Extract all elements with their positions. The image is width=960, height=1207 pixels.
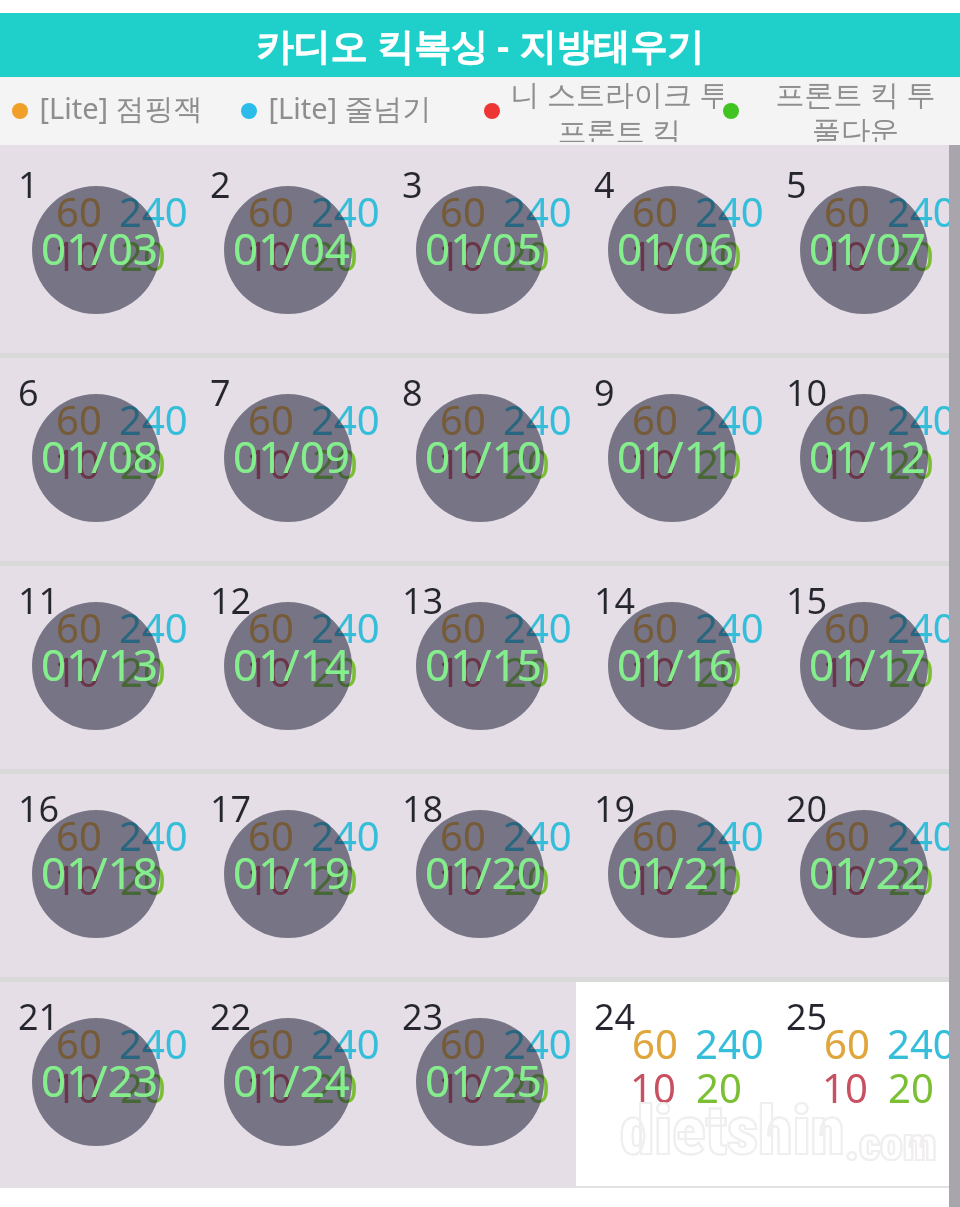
staticText: 10 [822, 644, 868, 698]
staticText: 60 [56, 808, 102, 862]
button[interactable]: 11 [0, 564, 192, 772]
staticText: [Lite] 줄넘기 [268, 88, 432, 128]
staticText: 01/25 [425, 1050, 543, 1110]
button[interactable]: 10 [768, 356, 960, 564]
staticText: 20 [312, 644, 358, 698]
staticText: 60 [824, 392, 870, 446]
staticText: 01/10 [425, 426, 543, 486]
staticText: 01/15 [425, 634, 543, 694]
staticText: 20 [696, 436, 742, 490]
button[interactable]: 12 [192, 564, 384, 772]
staticText: 10 [630, 436, 676, 490]
staticText: 20 [504, 1060, 550, 1114]
staticText: 8 [402, 368, 423, 417]
staticText: 니 스트라이크 투 프론트 킥 [510, 74, 723, 142]
staticText: 01/24 [233, 1050, 351, 1110]
staticText: 240 [887, 808, 956, 862]
button[interactable]: 23 [384, 980, 576, 1188]
staticText: 20 [504, 644, 550, 698]
button[interactable]: 14 [576, 564, 768, 772]
staticText: 10 [822, 852, 868, 906]
button[interactable]: 15 [768, 564, 960, 772]
button[interactable]: 6 [0, 356, 192, 564]
staticText: 10 [822, 228, 868, 282]
staticText: 01/05 [425, 218, 543, 278]
staticText: 20 [120, 644, 166, 698]
staticText: 10 [54, 436, 100, 490]
staticText: 20 [696, 1060, 742, 1114]
staticText: 20 [312, 228, 358, 282]
staticText: 20 [888, 228, 934, 282]
button[interactable]: 4 [576, 148, 768, 356]
staticText: 10 [630, 644, 676, 698]
staticText: 카디오 킥복싱 - 지방태우기 [256, 20, 704, 71]
staticText: 6 [18, 368, 39, 417]
staticText: 240 [119, 1016, 188, 1070]
staticText: 240 [887, 184, 956, 238]
button[interactable]: [Lite] 줄넘기 [241, 77, 433, 145]
button[interactable]: 2 [192, 148, 384, 356]
button[interactable]: 24 [576, 980, 768, 1188]
staticText: 60 [440, 600, 486, 654]
staticText: 10 [54, 852, 100, 906]
button[interactable]: 13 [384, 564, 576, 772]
staticText: 14 [594, 576, 636, 625]
staticText: 01/06 [617, 218, 735, 278]
staticText: 10 [438, 644, 484, 698]
staticText: 11 [18, 576, 60, 625]
staticText: 01/17 [809, 634, 927, 694]
staticText: 60 [824, 1016, 870, 1070]
staticText: 60 [824, 600, 870, 654]
staticText: 20 [888, 852, 934, 906]
button[interactable]: 22 [192, 980, 384, 1188]
staticText: 60 [56, 392, 102, 446]
button[interactable]: 20 [768, 772, 960, 980]
button[interactable]: 프론트 킥 투 풀다운 [723, 77, 960, 145]
staticText: 60 [248, 808, 294, 862]
button[interactable]: 니 스트라이크 투 프론트 킥 [484, 77, 723, 145]
staticText: 18 [402, 784, 444, 833]
button[interactable]: 3 [384, 148, 576, 356]
staticText: 60 [248, 600, 294, 654]
staticText: 01/20 [425, 842, 543, 902]
staticText: 2 [210, 160, 231, 209]
button[interactable]: 17 [192, 772, 384, 980]
staticText: .com [845, 1117, 937, 1171]
staticText: 20 [696, 852, 742, 906]
staticText: 01/19 [233, 842, 351, 902]
staticText: 01/23 [41, 1050, 159, 1110]
button[interactable]: 18 [384, 772, 576, 980]
button[interactable]: 9 [576, 356, 768, 564]
staticText: 01/13 [41, 634, 159, 694]
staticText: 20 [504, 436, 550, 490]
button[interactable]: 5 [768, 148, 960, 356]
staticText: 3 [402, 160, 423, 209]
staticText: 10 [246, 852, 292, 906]
staticText: 10 [246, 644, 292, 698]
button[interactable]: 8 [384, 356, 576, 564]
button[interactable]: 19 [576, 772, 768, 980]
staticText: 13 [402, 576, 444, 625]
button[interactable]: 7 [192, 356, 384, 564]
staticText: 20 [120, 1060, 166, 1114]
staticText: 5 [786, 160, 807, 209]
staticText: 240 [311, 1016, 380, 1070]
button[interactable]: 1 [0, 148, 192, 356]
staticText: 10 [246, 1060, 292, 1114]
staticText: 240 [119, 184, 188, 238]
button[interactable]: 21 [0, 980, 192, 1188]
staticText: 20 [696, 644, 742, 698]
staticText: 01/09 [233, 426, 351, 486]
button[interactable]: [Lite] 점핑잭 [12, 77, 204, 145]
staticText: 4 [594, 160, 615, 209]
staticText: 10 [630, 228, 676, 282]
staticText: 20 [888, 1060, 934, 1114]
staticText: 60 [824, 808, 870, 862]
button[interactable]: 25 [768, 980, 960, 1188]
staticText: 240 [695, 184, 764, 238]
staticText: 60 [632, 1016, 678, 1070]
staticText: 19 [594, 784, 636, 833]
button[interactable]: 16 [0, 772, 192, 980]
staticText: 240 [503, 184, 572, 238]
staticText: 240 [311, 808, 380, 862]
